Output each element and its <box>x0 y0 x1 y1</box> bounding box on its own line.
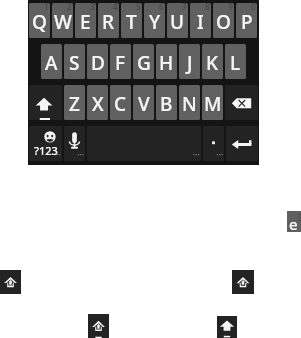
button[interactable]: O <box>213 3 234 38</box>
button[interactable]: Backspace <box>225 85 258 120</box>
button[interactable]: J <box>179 44 200 79</box>
button[interactable]: G <box>133 44 154 79</box>
staticText: 7 <box>182 3 187 13</box>
staticText: 4 <box>113 3 118 13</box>
staticText: W <box>54 9 72 35</box>
staticText: 6 <box>159 3 164 13</box>
button[interactable]: S <box>64 44 85 79</box>
staticText: A <box>45 50 58 76</box>
staticText: 8 <box>205 3 210 13</box>
button[interactable]: Shift <box>232 270 254 294</box>
button[interactable]: E <box>75 3 96 38</box>
staticText: U <box>170 9 185 35</box>
staticText: Y <box>149 9 161 35</box>
staticText: 9 <box>228 3 233 13</box>
button[interactable]: Shift <box>88 314 109 338</box>
button[interactable]: Caps lock <box>217 316 237 338</box>
staticText: X <box>92 91 104 117</box>
staticText: M <box>204 91 222 117</box>
button[interactable]: P <box>236 3 257 38</box>
staticText: V <box>138 91 150 117</box>
staticText: B <box>160 91 173 117</box>
staticText: 3 <box>90 3 95 13</box>
button[interactable]: K <box>202 44 223 79</box>
staticText: e <box>289 214 298 234</box>
button[interactable]: Q <box>29 3 50 38</box>
staticText: N <box>182 91 197 117</box>
staticText: 5 <box>136 3 141 13</box>
button[interactable]: Y <box>144 3 165 38</box>
staticText: D <box>91 50 105 76</box>
staticText: 3 <box>298 212 301 223</box>
staticText: 0 <box>251 3 256 13</box>
staticText: S <box>69 50 80 76</box>
button[interactable]: N <box>179 85 200 120</box>
button[interactable]: Period <box>203 126 224 161</box>
button[interactable]: Z <box>64 85 85 120</box>
button[interactable]: V <box>133 85 154 120</box>
staticText: P <box>241 9 253 35</box>
staticText: C <box>114 91 127 117</box>
button[interactable]: H <box>156 44 177 79</box>
staticText: ?123 <box>34 143 58 158</box>
button[interactable]: D <box>87 44 108 79</box>
button[interactable]: e key <box>287 211 301 232</box>
staticText: L <box>230 50 241 76</box>
button[interactable]: B <box>156 85 177 120</box>
button[interactable]: L <box>225 44 246 79</box>
button[interactable]: Symbols and emoji <box>29 126 62 161</box>
staticText: H <box>159 50 174 76</box>
button[interactable]: X <box>87 85 108 120</box>
staticText: Z <box>69 91 80 117</box>
button[interactable]: I <box>190 3 211 38</box>
staticText: T <box>126 9 137 35</box>
staticText: K <box>206 50 219 76</box>
button[interactable]: Enter <box>226 126 258 161</box>
button[interactable]: C <box>110 85 131 120</box>
button[interactable]: M <box>202 85 223 120</box>
button[interactable]: A <box>41 44 62 79</box>
button[interactable]: Shift <box>29 85 62 120</box>
staticText: J <box>187 50 193 76</box>
button[interactable]: W <box>52 3 73 38</box>
button[interactable]: R <box>98 3 119 38</box>
staticText: Q <box>32 9 47 35</box>
staticText: R <box>102 9 115 35</box>
staticText: O <box>216 9 231 35</box>
button[interactable]: Shift <box>0 270 21 294</box>
staticText: E <box>80 9 91 35</box>
staticText: 2 <box>67 3 72 13</box>
button[interactable]: T <box>121 3 142 38</box>
button[interactable]: U <box>167 3 188 38</box>
staticText: I <box>197 9 204 35</box>
staticText: F <box>115 50 126 76</box>
staticText: 1 <box>44 3 49 13</box>
button[interactable]: F <box>110 44 131 79</box>
staticText: G <box>137 50 151 76</box>
button[interactable]: Voice input <box>64 126 85 161</box>
